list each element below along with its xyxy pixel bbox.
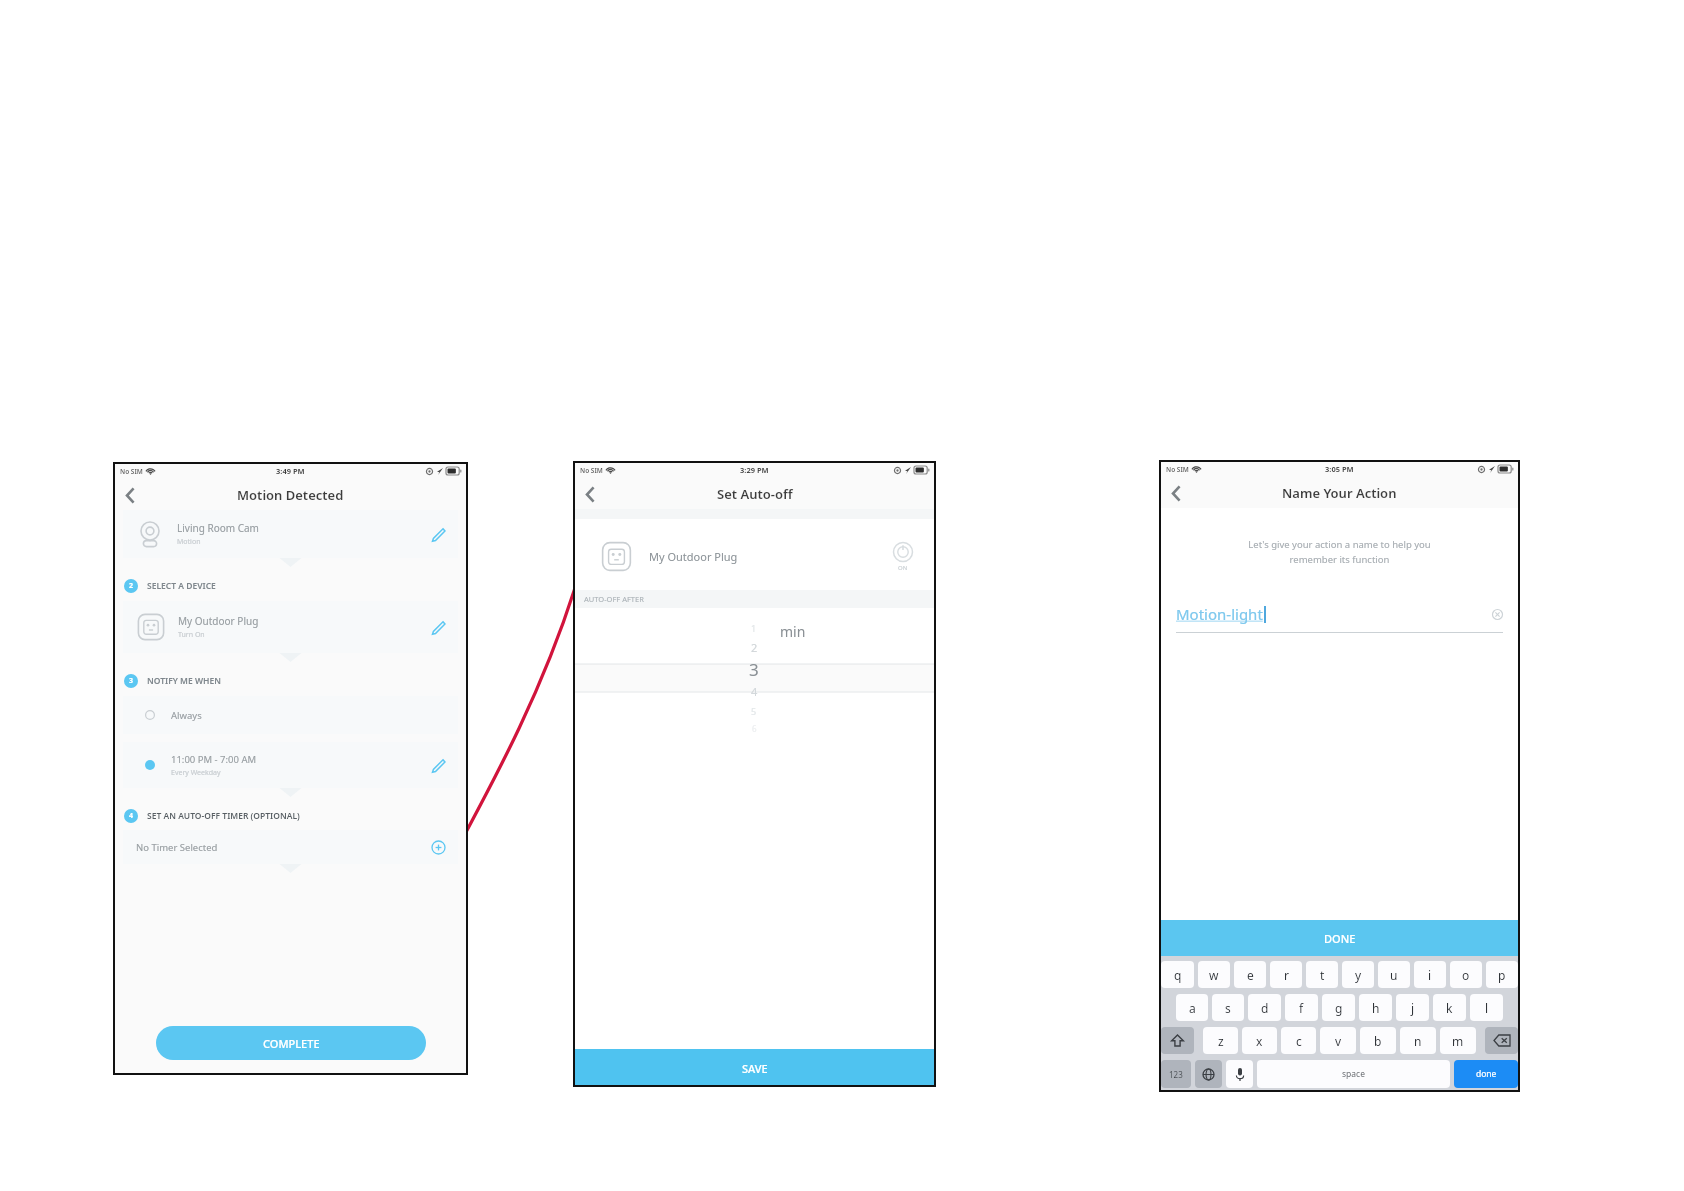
button[interactable]: v <box>1320 1027 1356 1054</box>
staticText: Set Auto-off <box>717 485 793 503</box>
staticText: done <box>1476 1068 1497 1080</box>
staticText: 5 <box>751 705 757 717</box>
staticText: i <box>1428 967 1432 983</box>
staticText: t <box>1320 967 1325 983</box>
staticText: No SIM <box>580 466 603 475</box>
button[interactable]: DONE <box>1159 920 1520 956</box>
staticText: q <box>1174 967 1182 983</box>
button[interactable]: My Outdoor Plug <box>573 528 936 584</box>
button[interactable]: g <box>1322 994 1355 1021</box>
button[interactable]: m <box>1440 1027 1476 1054</box>
button[interactable]: j <box>1396 994 1429 1021</box>
staticText: p <box>1498 967 1506 983</box>
staticText: SET AN AUTO-OFF TIMER (OPTIONAL) <box>147 810 300 822</box>
button[interactable]: h <box>1359 994 1392 1021</box>
button[interactable]: q <box>1161 961 1194 988</box>
staticText: min <box>780 622 806 641</box>
button[interactable]: c <box>1281 1027 1316 1054</box>
staticText: Living Room Cam <box>177 521 259 535</box>
staticText: DONE <box>1324 931 1356 946</box>
button[interactable]: t <box>1306 961 1338 988</box>
button[interactable]: z <box>1203 1027 1238 1054</box>
button[interactable]: o <box>1450 961 1482 988</box>
staticText: y <box>1355 967 1362 983</box>
button[interactable]: Backspace <box>1485 1027 1518 1054</box>
button[interactable]: Clear text <box>1492 609 1503 620</box>
button[interactable]: Power on <box>892 541 914 572</box>
other: Edit <box>431 620 446 635</box>
staticText: 123 <box>1169 1069 1183 1080</box>
button[interactable]: space <box>1257 1060 1450 1088</box>
button[interactable]: My Outdoor Plug <box>123 601 458 653</box>
staticText: j <box>1411 1000 1415 1016</box>
button[interactable]: Back <box>1159 478 1193 508</box>
staticText: Let's give your action a name to help yo… <box>1185 538 1494 566</box>
button[interactable]: l <box>1470 994 1503 1021</box>
staticText: Every Weekday <box>171 768 221 778</box>
staticText: My Outdoor Plug <box>178 614 259 628</box>
staticText: COMPLETE <box>263 1036 320 1051</box>
staticText: 3 <box>129 676 134 686</box>
staticText: k <box>1446 1000 1453 1016</box>
staticText: No SIM <box>120 467 143 476</box>
staticText: AUTO-OFF AFTER <box>584 594 644 604</box>
button[interactable]: r <box>1270 961 1302 988</box>
staticText: 1 <box>751 622 757 634</box>
staticText: c <box>1296 1033 1302 1049</box>
staticText: z <box>1218 1033 1224 1049</box>
button[interactable]: Always <box>123 696 458 734</box>
button[interactable]: Back <box>573 479 607 509</box>
staticText: l <box>1485 1000 1489 1016</box>
button[interactable]: n <box>1400 1027 1436 1054</box>
staticText: Name Your Action <box>1282 484 1397 502</box>
staticText: Always <box>171 709 202 722</box>
button[interactable]: Change keyboard <box>1195 1060 1222 1088</box>
button[interactable]: Back <box>113 480 147 510</box>
staticText: d <box>1261 1000 1269 1016</box>
button[interactable]: b <box>1360 1027 1396 1054</box>
button[interactable]: u <box>1378 961 1410 988</box>
button[interactable]: Numbers <box>1161 1060 1191 1088</box>
staticText: No SIM <box>1166 465 1189 474</box>
button[interactable]: y <box>1342 961 1374 988</box>
staticText: 4 <box>129 811 134 821</box>
staticText: 6 <box>752 723 757 734</box>
button[interactable]: done <box>1454 1060 1518 1088</box>
staticText: Motion-light <box>1176 604 1263 624</box>
staticText: 3:49 PM <box>276 466 305 476</box>
button[interactable]: p <box>1486 961 1518 988</box>
button[interactable]: COMPLETE <box>156 1026 426 1060</box>
button[interactable]: d <box>1248 994 1281 1021</box>
button[interactable]: 11:00 PM - 7:00 AM <box>123 742 458 788</box>
staticText: r <box>1284 967 1289 983</box>
other: Edit <box>431 758 446 773</box>
button[interactable]: No Timer Selected <box>123 830 458 864</box>
staticText: Motion Detected <box>237 486 344 504</box>
staticText: 2 <box>751 640 758 655</box>
staticText: u <box>1390 967 1398 983</box>
staticText: 2 <box>129 581 134 591</box>
staticText: o <box>1462 967 1470 983</box>
button[interactable]: Dictate <box>1226 1060 1253 1088</box>
button[interactable]: SAVE <box>573 1049 936 1087</box>
staticText: Motion <box>177 537 201 547</box>
staticText: a <box>1189 1000 1196 1016</box>
staticText: m <box>1452 1033 1464 1049</box>
staticText: e <box>1247 967 1254 983</box>
button[interactable]: x <box>1242 1027 1277 1054</box>
button[interactable]: Living Room Cam <box>123 510 458 558</box>
button[interactable]: i <box>1414 961 1446 988</box>
staticText: Turn On <box>178 630 205 640</box>
staticText: b <box>1374 1033 1382 1049</box>
other: Add timer <box>431 840 446 855</box>
button[interactable]: k <box>1433 994 1466 1021</box>
staticText: 4 <box>751 684 758 699</box>
staticText: My Outdoor Plug <box>649 549 738 564</box>
button[interactable]: s <box>1212 994 1244 1021</box>
button[interactable]: a <box>1176 994 1208 1021</box>
button[interactable]: w <box>1198 961 1230 988</box>
button[interactable]: Shift <box>1161 1027 1194 1054</box>
button[interactable]: f <box>1285 994 1318 1021</box>
staticText: g <box>1335 1000 1343 1016</box>
button[interactable]: e <box>1234 961 1266 988</box>
